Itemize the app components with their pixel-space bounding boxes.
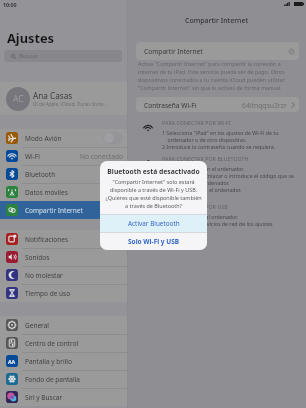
staticText: Activa "Compartir Internet" para compart… <box>138 60 290 92</box>
staticText: 2 En el iPad, toca Enlazar o introduce e… <box>162 172 294 179</box>
staticText: Ajustes <box>7 29 55 46</box>
staticText: "Compartir Internet" solo estará disponi… <box>104 178 203 210</box>
staticText: AA <box>8 358 16 365</box>
button[interactable]: Bluetooth <box>0 165 128 183</box>
staticText: 1 Enlaza el iPad con el ordenador. <box>162 165 245 172</box>
staticText: Pantalla y brillo <box>25 357 72 366</box>
staticText: 3 Conéctate desde el ordenador. <box>162 186 242 193</box>
staticText: Fondo de pantalla <box>25 375 80 384</box>
button[interactable]: Contraseña Wi-Fi <box>136 97 299 112</box>
staticText: PARA CONECTAR POR BLUETOOTH <box>162 155 249 162</box>
staticText: Notificaciones <box>25 235 69 244</box>
button[interactable]: Sonidos <box>0 248 128 266</box>
staticText: PARA CONECTAR POR USB <box>162 203 228 210</box>
staticText: Datos móviles <box>25 188 68 197</box>
staticText: No conectado <box>80 152 123 161</box>
button[interactable]: Centro de control <box>0 334 128 352</box>
staticText: 64itnqqsu3rzr <box>242 101 287 110</box>
staticText: Contraseña Wi-Fi <box>144 101 197 110</box>
staticText: 2 Introduce la contraseña cuando se requ… <box>162 143 276 150</box>
button[interactable]: No molestar <box>0 266 128 284</box>
button[interactable]: Fondo de pantalla <box>0 370 128 388</box>
button[interactable]: Siri y Buscar <box>0 388 128 406</box>
staticText: Wi-Fi <box>25 152 40 161</box>
staticText: Ana Casas <box>33 90 73 101</box>
staticText: Bluetooth <box>25 170 56 179</box>
staticText: 1 Conecta el iPad al ordenador. <box>162 213 238 220</box>
staticText: Modo Avión <box>25 134 62 143</box>
button[interactable]: AA <box>0 352 128 370</box>
button[interactable]: Datos móviles <box>0 183 128 201</box>
button[interactable]: AC <box>0 82 128 115</box>
button[interactable]: Compartir Internet <box>136 42 299 60</box>
staticText: ordenador o de otro dispositivo. <box>162 136 247 143</box>
button[interactable]: Tiempo de uso <box>0 284 128 302</box>
staticText: Tiempo de uso <box>25 289 71 298</box>
button[interactable]: Solo Wi-Fi y USB <box>100 233 207 250</box>
staticText: Siri y Buscar <box>25 393 63 402</box>
staticText: Sonidos <box>25 253 50 262</box>
button[interactable]: General <box>0 316 128 334</box>
staticText: Compartir Internet <box>144 47 203 56</box>
button[interactable]: Notificaciones <box>0 230 128 248</box>
staticText: muestra en el ordenador. <box>162 179 230 186</box>
staticText: Bluetooth está desactivado <box>104 167 203 176</box>
other: Cargando <box>288 48 295 55</box>
staticText: No molestar <box>25 271 63 280</box>
staticText: PARA CONECTAR POR WI-FI <box>162 119 231 126</box>
staticText: Centro de control <box>25 339 79 348</box>
button[interactable]: Buscar <box>4 50 122 62</box>
staticText: 1 Selecciona "iPad" en los ajustes de Wi… <box>162 129 279 136</box>
staticText: General <box>25 321 49 330</box>
staticText: Buscar <box>19 52 39 60</box>
staticText: ID de Apple, iCloud, iTunes Store... <box>33 101 107 107</box>
staticText: Compartir Internet <box>185 16 249 25</box>
staticText: Activar Bluetooth <box>128 219 180 228</box>
button[interactable]: Compartir Internet <box>0 201 128 219</box>
staticText: 10:00 <box>3 1 17 8</box>
button[interactable]: Activar Bluetooth <box>100 215 207 232</box>
button[interactable]: Activar modo avión <box>103 132 123 144</box>
staticText: Compartir Internet <box>25 206 83 215</box>
staticText: Solo Wi-Fi y USB <box>128 237 180 246</box>
button[interactable]: Wi-Fi <box>0 147 128 165</box>
staticText: AC <box>13 93 24 105</box>
staticText: 2 Elige iPad en servicios de red de los … <box>162 220 274 227</box>
button[interactable]: Modo Avión <box>0 129 128 147</box>
